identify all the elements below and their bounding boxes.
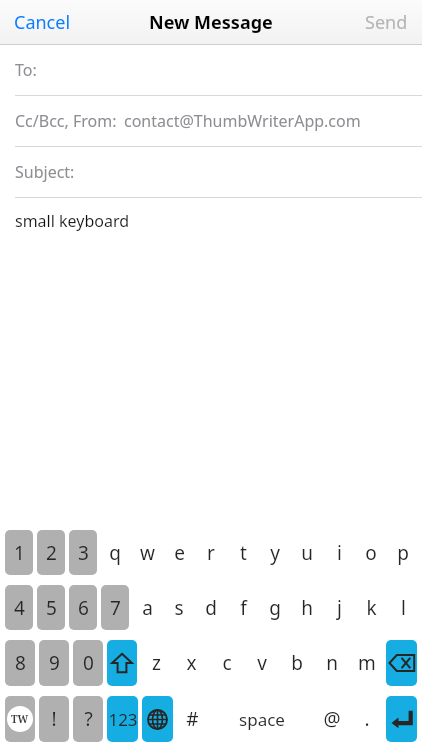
button[interactable]: Backspace bbox=[386, 640, 417, 686]
button[interactable]: Send bbox=[351, 0, 422, 44]
button[interactable]: r bbox=[197, 530, 225, 575]
button[interactable]: 4 bbox=[5, 585, 33, 630]
button[interactable]: z bbox=[141, 640, 172, 686]
button[interactable]: @ bbox=[316, 696, 347, 742]
staticText: c bbox=[222, 650, 232, 676]
button[interactable]: space bbox=[212, 696, 312, 742]
button[interactable]: Switch keyboard bbox=[142, 696, 173, 742]
staticText: To: bbox=[15, 59, 37, 81]
staticText: 4 bbox=[14, 595, 25, 621]
button[interactable]: 123 bbox=[107, 696, 138, 742]
button[interactable]: 6 bbox=[69, 585, 97, 630]
staticText: Cancel bbox=[14, 10, 71, 35]
staticText: f bbox=[240, 595, 247, 621]
staticText: ! bbox=[51, 706, 57, 732]
button[interactable]: # bbox=[177, 696, 208, 742]
button[interactable]: ? bbox=[73, 696, 103, 742]
button[interactable]: o bbox=[357, 530, 385, 575]
button[interactable]: w bbox=[133, 530, 161, 575]
button[interactable]: . bbox=[351, 696, 382, 742]
button[interactable]: 9 bbox=[39, 640, 69, 686]
staticText: space bbox=[239, 708, 285, 731]
staticText: g bbox=[269, 595, 281, 621]
staticText: 123 bbox=[108, 708, 138, 731]
staticText: w bbox=[140, 540, 155, 566]
button[interactable]: v bbox=[246, 640, 277, 686]
staticText: 0 bbox=[83, 650, 94, 676]
staticText: New Message bbox=[149, 10, 273, 35]
staticText: i bbox=[337, 540, 342, 566]
staticText: e bbox=[174, 540, 185, 566]
button[interactable]: x bbox=[176, 640, 207, 686]
button[interactable]: b bbox=[281, 640, 312, 686]
button[interactable]: t bbox=[229, 530, 257, 575]
button[interactable]: a bbox=[133, 585, 161, 630]
staticText: l bbox=[401, 595, 406, 621]
button[interactable]: p bbox=[389, 530, 417, 575]
button[interactable]: y bbox=[261, 530, 289, 575]
staticText: o bbox=[365, 540, 377, 566]
staticText: 3 bbox=[78, 540, 89, 566]
staticText: d bbox=[205, 595, 217, 621]
staticText: 1 bbox=[14, 540, 25, 566]
button[interactable]: 0 bbox=[73, 640, 103, 686]
button[interactable]: j bbox=[325, 585, 353, 630]
button[interactable]: 7 bbox=[101, 585, 129, 630]
staticText: small keyboard bbox=[15, 210, 130, 232]
staticText: ? bbox=[84, 706, 93, 732]
staticText: Subject: bbox=[15, 161, 75, 183]
staticText: s bbox=[174, 595, 184, 621]
button[interactable]: Cancel bbox=[0, 0, 85, 44]
button[interactable]: small keyboard bbox=[0, 198, 422, 244]
button[interactable]: q bbox=[101, 530, 129, 575]
button[interactable]: d bbox=[197, 585, 225, 630]
staticText: t bbox=[240, 540, 247, 566]
staticText: Send bbox=[365, 10, 408, 35]
button[interactable]: 2 bbox=[37, 530, 65, 575]
button[interactable]: 1 bbox=[5, 530, 33, 575]
staticText: j bbox=[337, 595, 342, 621]
staticText: 5 bbox=[46, 595, 57, 621]
button[interactable]: u bbox=[293, 530, 321, 575]
button[interactable]: i bbox=[325, 530, 353, 575]
button[interactable]: Cc/Bcc, From: bbox=[0, 96, 422, 146]
staticText: @ bbox=[323, 706, 341, 732]
button[interactable]: g bbox=[261, 585, 289, 630]
staticText: r bbox=[207, 540, 215, 566]
button[interactable]: f bbox=[229, 585, 257, 630]
staticText: x bbox=[186, 650, 197, 676]
button[interactable]: Return bbox=[386, 696, 417, 742]
staticText: 9 bbox=[49, 650, 60, 676]
button[interactable]: s bbox=[165, 585, 193, 630]
staticText: contact@ThumbWriterApp.com bbox=[124, 110, 361, 132]
staticText: y bbox=[270, 540, 280, 566]
button[interactable]: h bbox=[293, 585, 321, 630]
button[interactable]: To: bbox=[0, 45, 422, 95]
staticText: u bbox=[301, 540, 313, 566]
staticText: 6 bbox=[78, 595, 89, 621]
button[interactable]: n bbox=[316, 640, 347, 686]
button[interactable]: Subject: bbox=[0, 147, 422, 197]
button[interactable]: k bbox=[357, 585, 385, 630]
staticText: h bbox=[301, 595, 313, 621]
staticText: z bbox=[152, 650, 161, 676]
button[interactable]: m bbox=[351, 640, 382, 686]
staticText: Cc/Bcc, From: bbox=[15, 110, 117, 132]
button[interactable]: l bbox=[389, 585, 417, 630]
staticText: p bbox=[397, 540, 409, 566]
staticText: # bbox=[186, 706, 199, 732]
staticText: 7 bbox=[110, 595, 121, 621]
staticText: a bbox=[142, 595, 153, 621]
button[interactable]: 5 bbox=[37, 585, 65, 630]
button[interactable]: ThumbWriter bbox=[5, 696, 35, 742]
staticText: q bbox=[109, 540, 121, 566]
button[interactable]: c bbox=[211, 640, 242, 686]
button[interactable]: e bbox=[165, 530, 193, 575]
button[interactable]: Shift bbox=[107, 640, 137, 686]
button[interactable]: 8 bbox=[5, 640, 35, 686]
staticText: n bbox=[326, 650, 338, 676]
staticText: m bbox=[358, 650, 376, 676]
button[interactable]: ! bbox=[39, 696, 69, 742]
staticText: TW bbox=[11, 712, 29, 726]
button[interactable]: 3 bbox=[69, 530, 97, 575]
